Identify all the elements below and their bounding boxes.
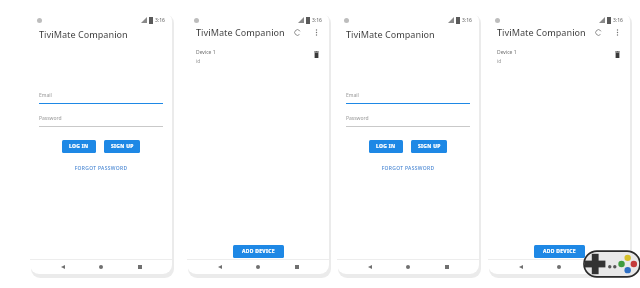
button[interactable]: Home [95,261,107,273]
button[interactable]: Recent apps [291,261,303,273]
button[interactable]: Home [402,261,414,273]
staticText: Email [39,92,52,99]
staticText: FORGOT PASSWORD [337,165,479,172]
button[interactable]: Refresh [291,26,303,38]
button[interactable]: Delete device [311,49,321,59]
button[interactable]: ADD DEVICE [534,245,585,258]
button[interactable]: Home [553,261,565,273]
staticText: Password [39,115,62,122]
button[interactable]: Back [515,261,527,273]
button[interactable]: Back [57,261,69,273]
staticText: LOG IN [376,143,396,150]
button[interactable]: Delete device [612,49,622,59]
button[interactable]: Back [364,261,376,273]
button[interactable]: Home [252,261,264,273]
staticText: 3:16 [613,17,623,24]
staticText: ADD DEVICE [242,248,275,255]
staticText: TiviMate Companion [497,26,586,38]
staticText: 3:16 [312,17,322,24]
button[interactable]: Recent apps [592,261,604,273]
staticText: 3:16 [462,17,472,24]
button[interactable]: Recent apps [441,261,453,273]
button[interactable]: ADD DEVICE [233,245,284,258]
button[interactable]: LOG IN [369,140,403,153]
button[interactable]: Back [214,261,226,273]
staticText: Password [346,115,369,122]
staticText: Device 1 [196,49,216,56]
button[interactable]: More options [611,26,623,38]
staticText: Device 1 [497,49,517,56]
button[interactable]: SIGN UP [411,140,447,153]
staticText: SIGN UP [418,143,441,150]
staticText: id [196,58,201,65]
staticText: TiviMate Companion [39,28,128,40]
staticText: LOG IN [69,143,89,150]
staticText: TiviMate Companion [196,26,285,38]
staticText: 3:16 [155,17,165,24]
staticText: FORGOT PASSWORD [30,165,172,172]
button[interactable]: Device 1 [488,49,630,65]
button[interactable]: More options [310,26,322,38]
button[interactable]: Device 1 [187,49,329,65]
button[interactable]: Refresh [592,26,604,38]
staticText: TiviMate Companion [346,28,435,40]
staticText: SIGN UP [111,143,134,150]
button[interactable]: SIGN UP [104,140,140,153]
staticText: ADD DEVICE [543,248,576,255]
staticText: id [497,58,502,65]
button[interactable]: Recent apps [134,261,146,273]
staticText: Email [346,92,359,99]
button[interactable]: LOG IN [62,140,96,153]
